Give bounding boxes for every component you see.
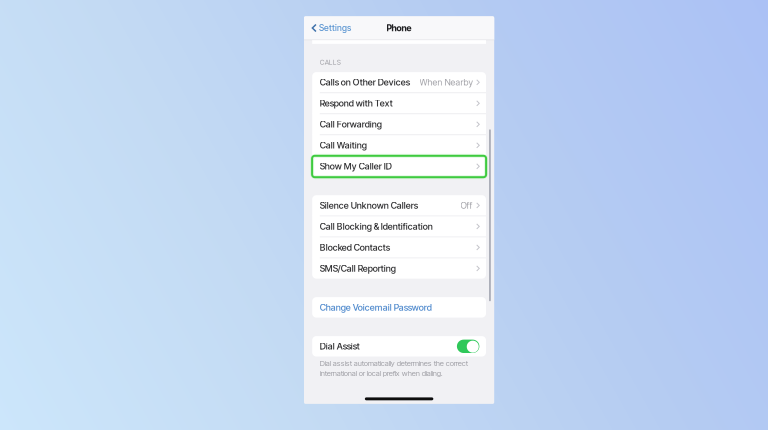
button[interactable]: Back to Settings <box>304 16 376 40</box>
staticText: Settings <box>319 23 351 33</box>
staticText: Calls on Other Devices <box>320 77 410 88</box>
staticText: Dial Assist <box>320 341 360 352</box>
staticText: Phone <box>387 23 412 33</box>
staticText: When Nearby <box>420 77 473 88</box>
staticText: Respond with Text <box>320 98 393 109</box>
button[interactable]: Calls on Other Devices <box>312 72 486 92</box>
button[interactable]: Silence Unknown Callers <box>312 195 486 216</box>
staticText: Show My Caller ID <box>320 161 392 172</box>
staticText: SMS/Call Reporting <box>320 263 396 274</box>
staticText: Blocked Contacts <box>320 242 390 253</box>
button[interactable]: Call Forwarding <box>312 114 486 134</box>
button[interactable]: Dial Assist, on <box>312 336 486 356</box>
staticText: Off <box>460 200 472 211</box>
staticText: international or local prefix when diali… <box>320 368 443 378</box>
button[interactable]: Call Waiting <box>312 135 486 155</box>
button[interactable]: Respond with Text <box>312 93 486 113</box>
button[interactable]: Call Blocking & Identification <box>312 216 486 237</box>
staticText: Dial assist automatically determines the… <box>320 359 468 368</box>
staticText: Change Voicemail Password <box>320 302 432 313</box>
staticText: Call Forwarding <box>320 119 382 130</box>
staticText: Call Waiting <box>320 140 367 151</box>
staticText: CALLS <box>320 58 341 66</box>
button[interactable]: Blocked Contacts <box>312 237 486 258</box>
button[interactable]: Show My Caller ID <box>312 156 486 176</box>
staticText: Silence Unknown Callers <box>320 200 418 211</box>
button[interactable]: SMS/Call Reporting <box>312 258 486 279</box>
staticText: Call Blocking & Identification <box>320 221 433 232</box>
button[interactable]: Change Voicemail Password <box>312 297 486 317</box>
